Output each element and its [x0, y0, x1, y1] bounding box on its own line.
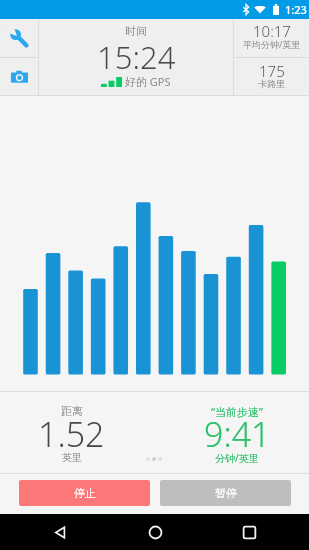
button[interactable]: 10:17 — [234, 19, 309, 57]
button[interactable]: Settings — [0, 19, 38, 57]
button[interactable]: Camera — [0, 58, 38, 96]
staticText: 停止 — [74, 486, 96, 500]
button[interactable]: 175 — [234, 58, 309, 96]
button[interactable]: 停止 — [19, 480, 150, 506]
button[interactable]: Back — [10, 514, 111, 550]
staticText: 分钟/英里 — [215, 451, 259, 465]
staticText: 距离 — [61, 404, 83, 418]
staticText: 1.52 — [38, 411, 105, 457]
staticText: 10:17 — [253, 21, 291, 41]
staticText: 175 — [259, 61, 285, 81]
staticText: “当前步速” — [211, 404, 263, 419]
staticText: 英里 — [62, 451, 82, 464]
staticText: 平均分钟/英里 — [243, 38, 301, 50]
staticText: 时间 — [125, 24, 147, 38]
button[interactable]: “当前步速” — [165, 392, 309, 473]
staticText: 9:41 — [204, 411, 271, 457]
staticText: 暂停 — [215, 486, 237, 500]
staticText: 卡路里 — [258, 78, 285, 89]
button[interactable]: 时间 — [39, 19, 233, 96]
button[interactable]: 距离 — [0, 392, 143, 473]
button[interactable]: Home — [104, 514, 206, 550]
button[interactable]: 暂停 — [160, 480, 291, 506]
staticText: 15:24 — [97, 36, 176, 78]
staticText: 好的 GPS — [125, 74, 171, 89]
staticText: 1:23 — [285, 2, 307, 17]
button[interactable]: Recents — [198, 514, 300, 550]
